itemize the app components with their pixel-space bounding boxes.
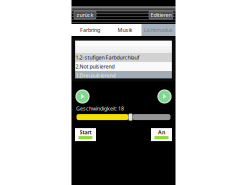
button[interactable]: Farbmodus abspielen — [158, 90, 171, 103]
button[interactable]: 2.Not pulsierend — [73, 62, 173, 71]
button[interactable]: Farbring — [71, 24, 108, 36]
staticText: Musik — [117, 26, 132, 34]
staticText: Start — [79, 128, 91, 136]
button[interactable]: Lichtmodus — [141, 24, 175, 36]
button[interactable]: 3.Drei pulsierend — [73, 71, 173, 80]
button[interactable]: 1,2-stufigen Farbdurchlauf — [73, 53, 173, 62]
staticText: 1,2-stufigen Farbdurchlauf — [75, 54, 139, 61]
staticText: Lichtmodus — [144, 26, 173, 34]
staticText: 3.Drei pulsierend — [75, 72, 115, 79]
button[interactable]: Farbmodus abspielen — [76, 90, 89, 103]
button[interactable]: Start — [75, 128, 96, 141]
staticText: 2.Not pulsierend — [75, 63, 114, 70]
staticText: Geschwindigkeit: 18 — [76, 105, 124, 112]
button[interactable]: An — [151, 128, 172, 141]
button[interactable]: zurück — [74, 11, 96, 19]
button[interactable]: Editieren — [149, 11, 173, 19]
staticText: Editieren — [150, 11, 171, 19]
button[interactable]: Musik — [108, 24, 141, 36]
staticText: zurück — [76, 11, 93, 19]
staticText: An — [158, 128, 165, 136]
staticText: Farbring — [80, 26, 100, 34]
